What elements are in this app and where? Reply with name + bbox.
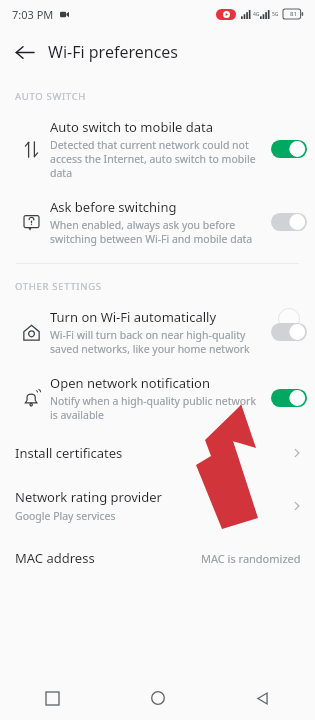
button[interactable]: Auto switch to mobile data xyxy=(0,109,315,189)
button[interactable]: Home xyxy=(105,676,210,720)
button[interactable]: Toggle off xyxy=(271,321,307,343)
button[interactable]: Network rating provider xyxy=(0,475,315,536)
button[interactable]: Install certificates xyxy=(0,431,315,475)
staticText: AUTO SWITCH xyxy=(15,90,87,103)
staticText: Network rating provider xyxy=(15,488,162,506)
button[interactable]: Back xyxy=(0,28,48,76)
button[interactable]: Back xyxy=(210,676,315,720)
button[interactable]: Toggle on xyxy=(271,138,307,160)
button[interactable]: Toggle on xyxy=(271,387,307,409)
staticText: MAC is randomized xyxy=(201,551,301,566)
button[interactable]: Turn on Wi-Fi automatically xyxy=(0,299,315,365)
staticText: Ask before switching xyxy=(50,198,177,216)
staticText: When enabled, always ask you before swit… xyxy=(50,218,265,246)
staticText: 81 xyxy=(290,10,297,18)
staticText: 4G xyxy=(253,11,260,18)
staticText: OTHER SETTINGS xyxy=(15,280,102,293)
staticText: MAC address xyxy=(15,549,95,567)
button[interactable]: Toggle off xyxy=(271,211,307,233)
staticText: Turn on Wi-Fi automatically xyxy=(50,308,217,326)
button[interactable]: Open network notification xyxy=(0,365,315,431)
staticText: Open network notification xyxy=(50,374,210,392)
button[interactable]: Ask before switching xyxy=(0,189,315,255)
staticText: Detected that current network could not … xyxy=(50,138,265,180)
staticText: 7:03 PM xyxy=(12,7,54,22)
button[interactable]: MAC address xyxy=(0,536,315,580)
button[interactable]: Recent apps xyxy=(0,676,105,720)
staticText: Notify when a high-quality public networ… xyxy=(50,394,265,422)
staticText: Google Play services xyxy=(15,509,116,523)
staticText: 5G xyxy=(272,11,279,18)
staticText: Auto switch to mobile data xyxy=(50,118,214,136)
staticText: Wi-Fi will turn back on near high-qualit… xyxy=(50,328,265,356)
staticText: Wi-Fi preferences xyxy=(48,41,179,63)
staticText: Install certificates xyxy=(15,444,123,462)
